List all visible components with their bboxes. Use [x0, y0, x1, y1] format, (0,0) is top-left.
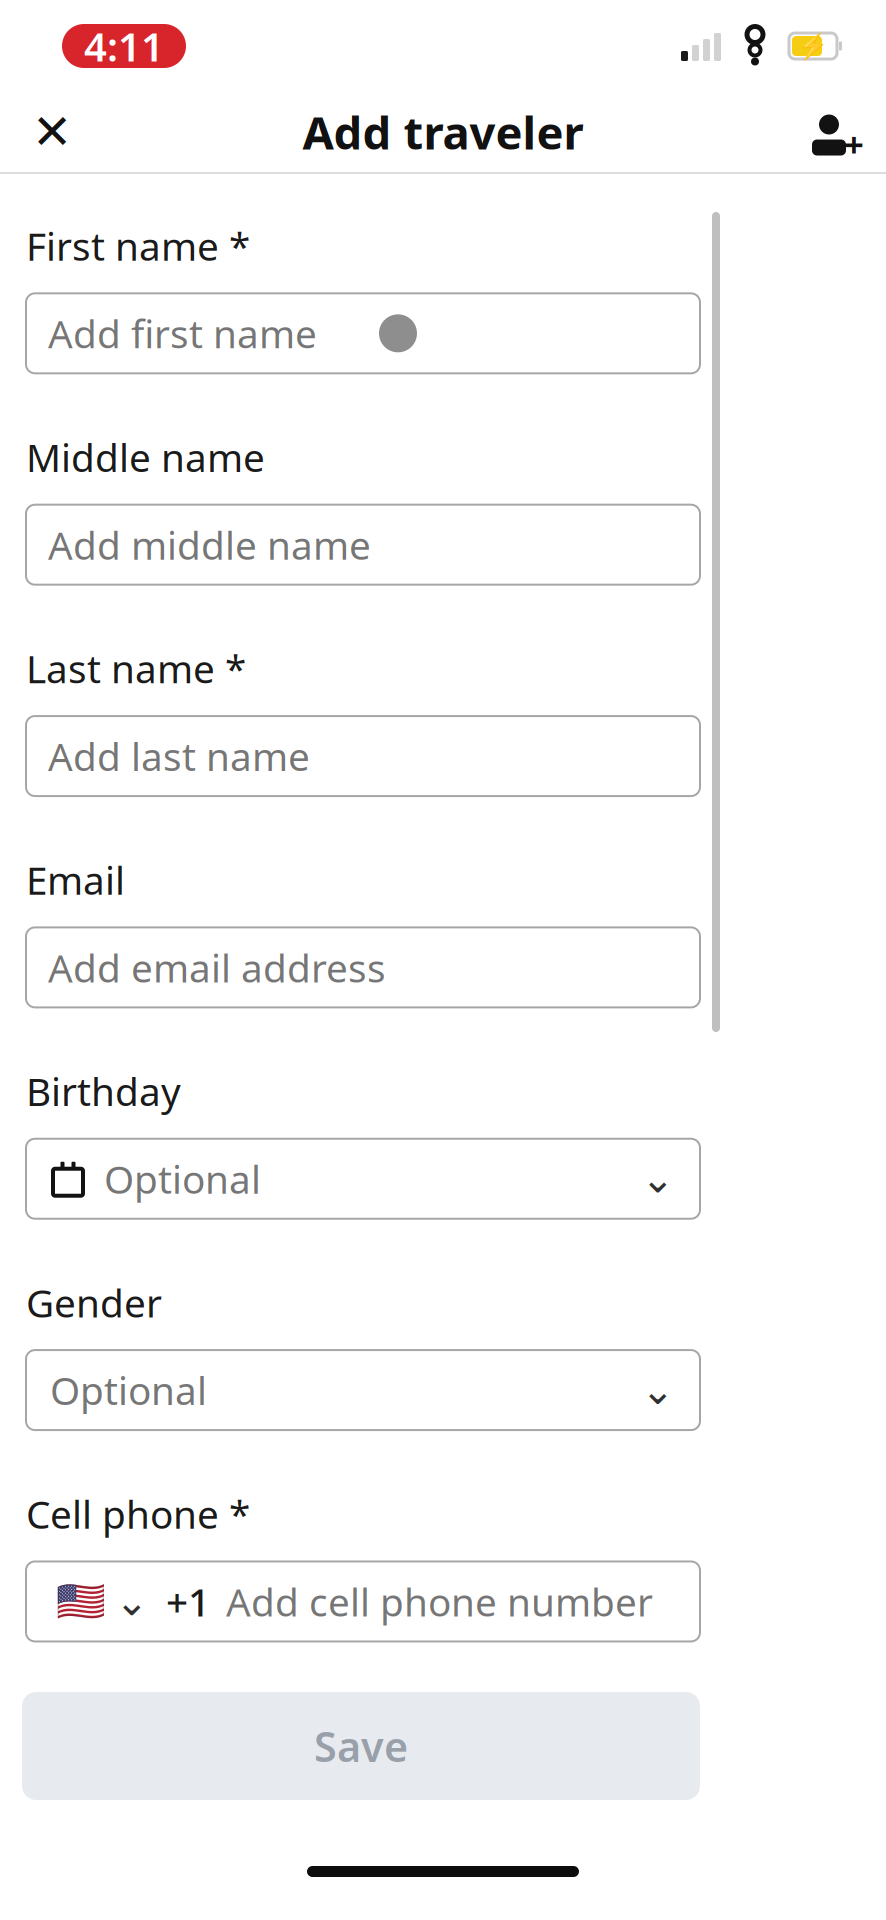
- staticText: Save: [314, 1719, 408, 1773]
- staticText: Email: [26, 854, 125, 905]
- staticText: 🇺🇸: [56, 1579, 106, 1624]
- staticText: Add last name: [48, 730, 310, 782]
- button[interactable]: Add traveler from contacts: [798, 96, 870, 168]
- staticText: Cell phone *: [26, 1488, 250, 1539]
- staticText: Add first name: [48, 308, 317, 359]
- staticText: Birthday: [26, 1065, 181, 1117]
- staticText: Add middle name: [48, 519, 371, 570]
- staticText: 4:11: [84, 19, 164, 72]
- staticText: ⚡: [797, 31, 829, 60]
- staticText: ✕: [32, 105, 72, 159]
- staticText: ⌄: [641, 1367, 675, 1413]
- button[interactable]: Optional: [26, 1350, 700, 1430]
- staticText: Last name *: [26, 643, 246, 694]
- staticText: Gender: [26, 1277, 162, 1328]
- staticText: Add cell phone number: [226, 1576, 653, 1627]
- staticText: First name *: [26, 220, 250, 271]
- button[interactable]: Save: [22, 1692, 700, 1800]
- staticText: +1: [166, 1576, 210, 1627]
- button[interactable]: Optional: [26, 1139, 700, 1219]
- staticText: Add traveler: [302, 102, 583, 162]
- staticText: +: [844, 121, 864, 167]
- staticText: Optional: [104, 1153, 261, 1204]
- staticText: ⌄: [641, 1156, 675, 1201]
- button[interactable]: Close: [16, 96, 88, 168]
- staticText: Add email address: [48, 942, 386, 993]
- staticText: Middle name: [26, 431, 265, 483]
- staticText: Optional: [50, 1364, 207, 1416]
- staticText: ⌄: [115, 1579, 149, 1624]
